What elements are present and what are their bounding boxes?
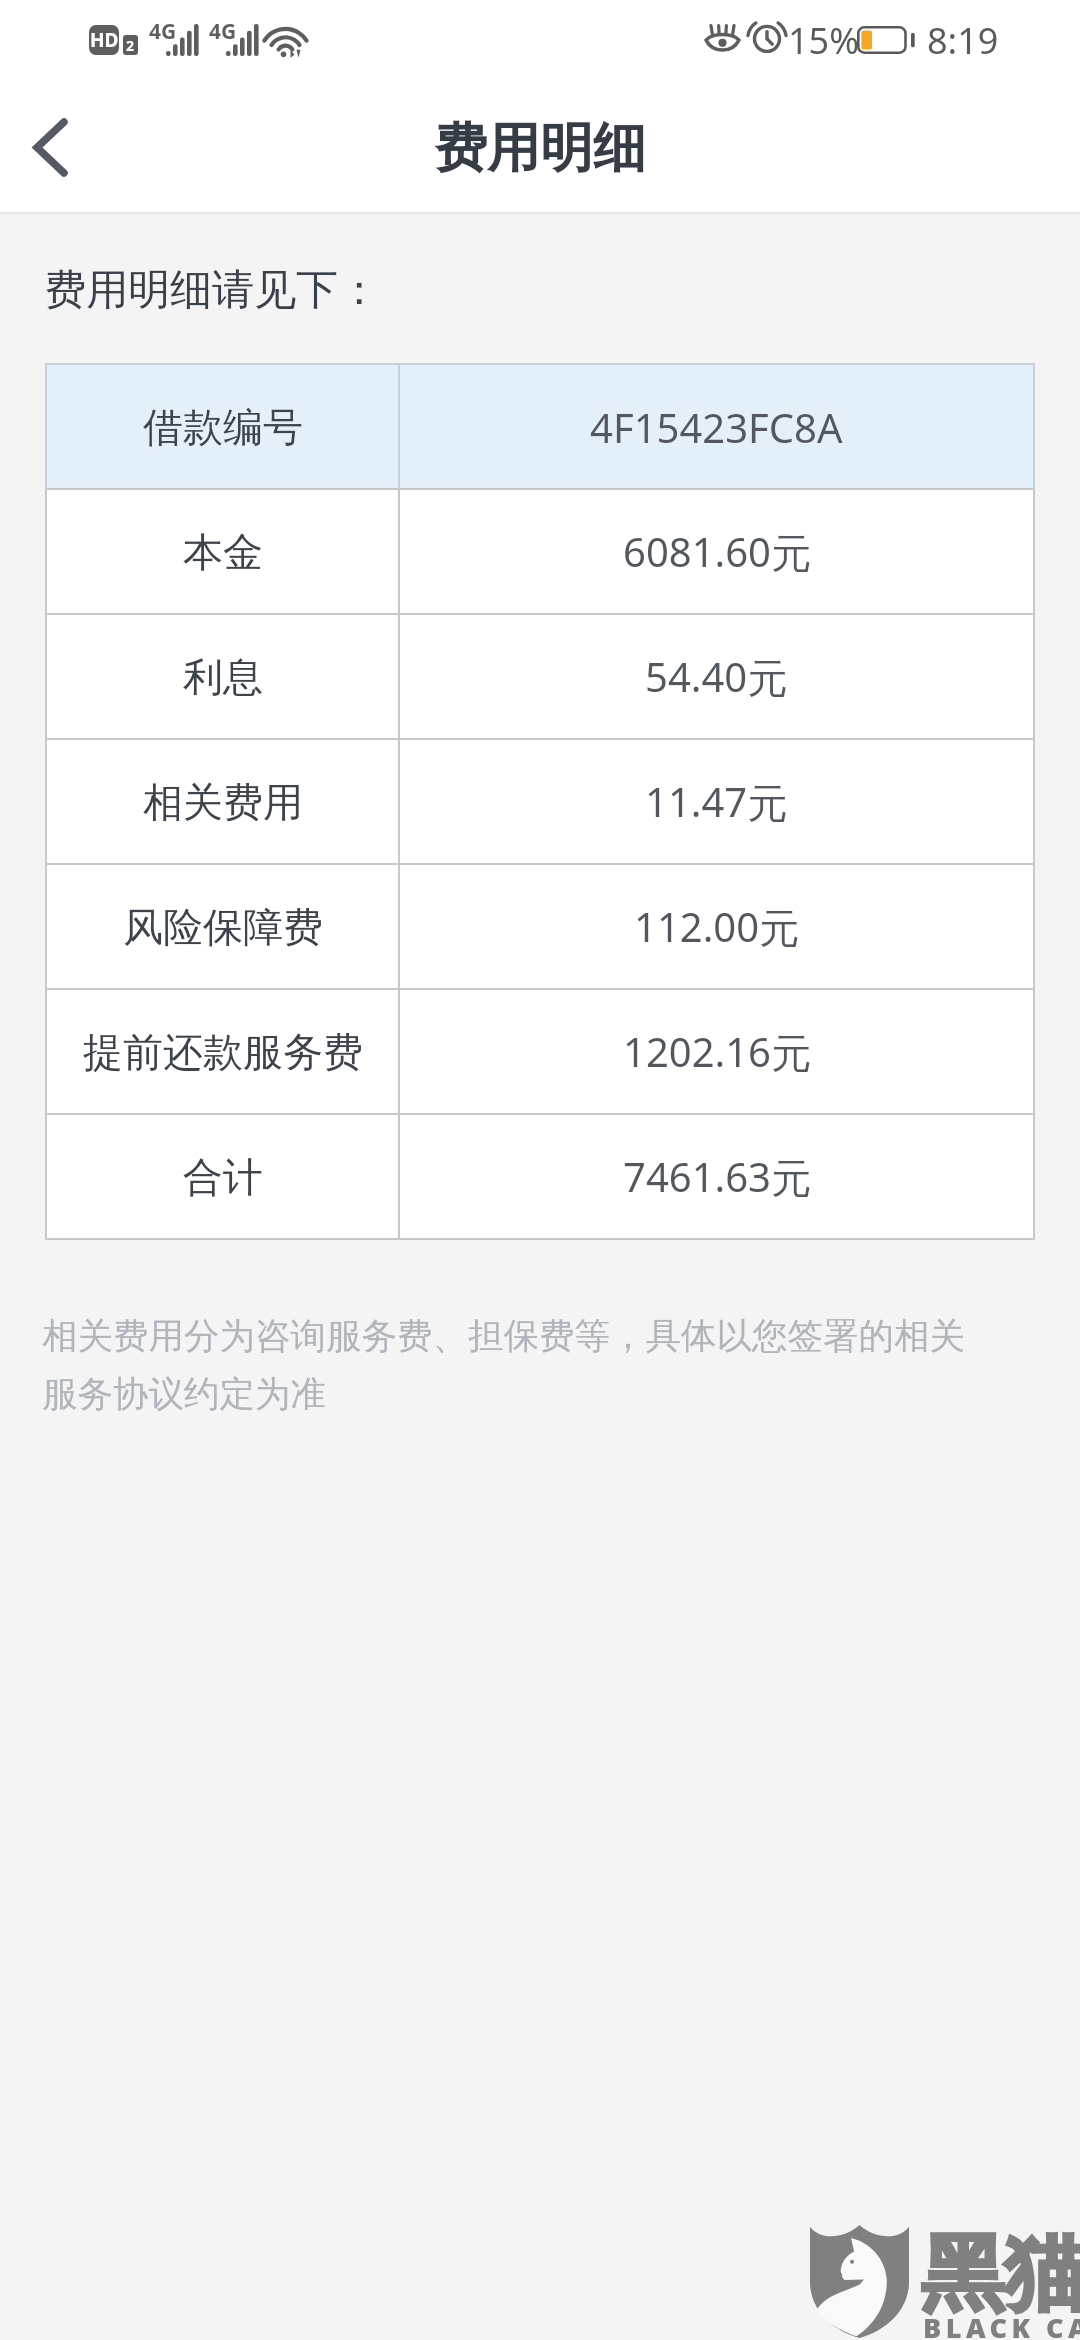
- staticText: 4F15423FC8A: [590, 400, 843, 454]
- staticText: 合计: [183, 1152, 263, 1202]
- staticText: 相关费用分为咨询服务费、担保费等，具体以您签署的相关服务协议约定为准: [42, 1314, 1000, 1416]
- staticText: 54.40元: [645, 649, 788, 704]
- staticText: 8:19: [927, 16, 999, 65]
- staticText: 4G: [209, 17, 237, 46]
- staticText: 1202.16元: [623, 1024, 811, 1079]
- staticText: 7461.63元: [623, 1149, 811, 1204]
- staticText: 本金: [183, 527, 263, 577]
- staticText: 112.00元: [634, 899, 800, 954]
- staticText: BLACK CAT: [923, 2309, 1080, 2340]
- staticText: 风险保障费: [123, 902, 323, 952]
- button[interactable]: Back: [0, 80, 100, 214]
- staticText: 2: [126, 36, 135, 55]
- staticText: 利息: [183, 652, 263, 702]
- staticText: 4G: [149, 17, 177, 46]
- staticText: 费用明细请见下：: [44, 264, 380, 317]
- staticText: 11.47元: [645, 774, 788, 829]
- staticText: 黑猫: [921, 2222, 1080, 2327]
- staticText: 借款编号: [143, 402, 303, 452]
- staticText: HD: [90, 27, 119, 53]
- staticText: 相关费用: [143, 777, 303, 827]
- staticText: 提前还款服务费: [83, 1027, 363, 1077]
- staticText: 15%: [788, 16, 860, 65]
- staticText: 6081.60元: [623, 524, 811, 579]
- staticText: 费用明细: [434, 115, 646, 182]
